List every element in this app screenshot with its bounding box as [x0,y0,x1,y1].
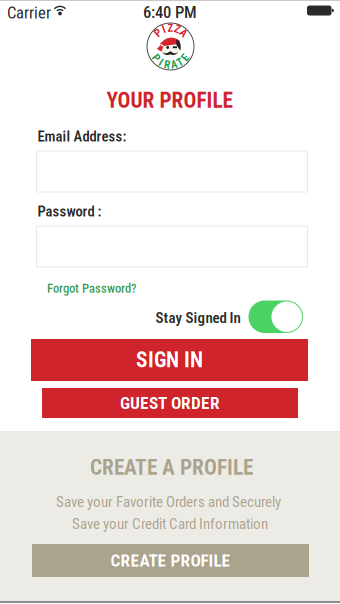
staticText: Z [174,23,180,35]
staticText: Forgot Password? [47,281,137,296]
button[interactable]: GUEST ORDER [42,388,298,418]
staticText: Carrier [7,3,51,22]
staticText: E [183,52,188,64]
staticText: Save your Credit Card Information [72,515,268,533]
staticText: CREATE PROFILE [110,550,230,571]
staticText: YOUR PROFILE [106,88,232,113]
staticText: SIGN IN [136,347,203,372]
button[interactable]: Stay Signed In [248,300,303,333]
button[interactable]: CREATE PROFILE [32,544,309,577]
staticText: I [159,56,162,69]
staticText: GUEST ORDER [120,393,220,413]
staticText: I [162,23,165,35]
staticText: A [180,27,186,39]
staticText: Z [167,22,173,34]
staticText: Password : [37,203,101,220]
staticText: Stay Signed In [155,309,240,327]
staticText: R [164,58,170,71]
staticText: CREATE A PROFILE [90,455,253,480]
staticText: Email Address: [37,128,126,145]
button[interactable]: SIGN IN [31,339,308,381]
staticText: P [153,52,159,64]
staticText: A [171,58,177,71]
staticText: P [155,27,161,39]
staticText: T [177,56,183,69]
staticText: Save your Favorite Orders and Securely [56,493,281,511]
staticText: 6:40 PM [143,2,197,22]
button[interactable]: Forgot Password? [44,278,140,299]
